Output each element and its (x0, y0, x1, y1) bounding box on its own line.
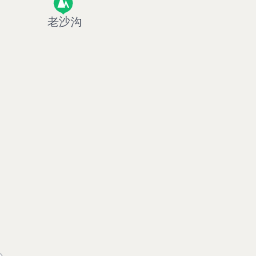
button[interactable]: Map control (0, 252, 3, 256)
button[interactable]: 老沙沟 scenic spot marker (46, 0, 81, 29)
staticText: 老沙沟 (47, 15, 82, 29)
